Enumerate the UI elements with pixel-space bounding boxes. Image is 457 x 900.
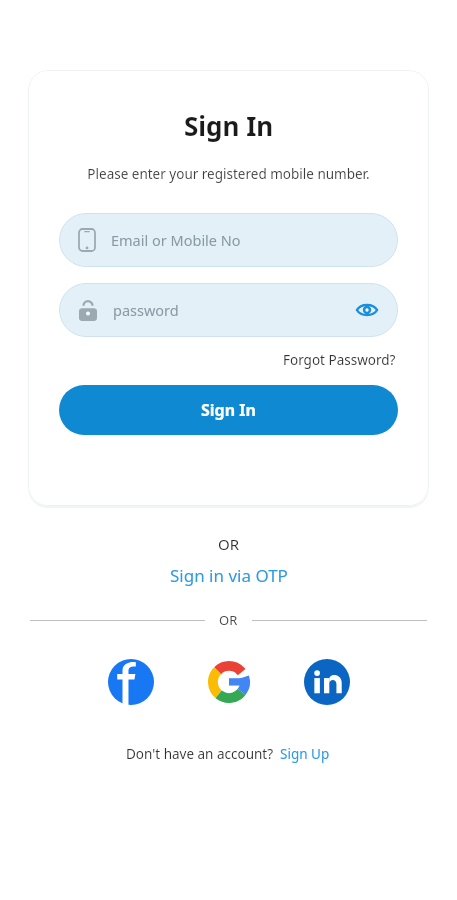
button[interactable]: Sign In	[59, 385, 398, 435]
staticText: Email or Mobile No	[111, 230, 241, 250]
staticText: OR	[219, 611, 238, 629]
staticText: Sign In	[201, 399, 256, 421]
staticText: password	[113, 300, 179, 320]
staticText: Sign Up	[280, 745, 330, 763]
button[interactable]: Forgot Password?	[281, 349, 398, 371]
staticText: OR	[0, 534, 457, 554]
button[interactable]: Email or Mobile No	[59, 213, 398, 267]
button[interactable]: Sign in with Google	[202, 655, 256, 709]
button[interactable]: Sign in via OTP	[164, 562, 294, 589]
button[interactable]: Sign in with Facebook	[104, 655, 158, 709]
button[interactable]: Sign in with LinkedIn	[300, 655, 354, 709]
staticText: Forgot Password?	[283, 351, 396, 369]
staticText: Please enter your registered mobile numb…	[87, 165, 370, 183]
button[interactable]: Show password	[354, 297, 380, 323]
button[interactable]: Sign Up	[274, 743, 332, 765]
staticText: Sign in via OTP	[170, 564, 288, 587]
button[interactable]: password	[59, 283, 398, 337]
staticText: Don't have an account?	[126, 745, 274, 763]
staticText: Sign In	[184, 108, 274, 143]
